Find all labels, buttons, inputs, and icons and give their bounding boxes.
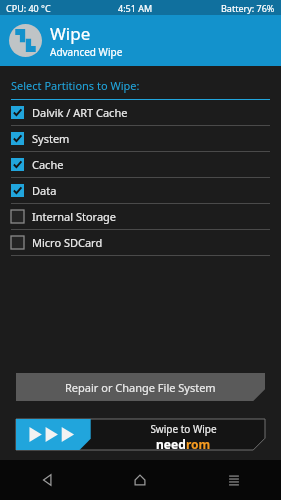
staticText: Battery: 76% — [221, 2, 275, 14]
staticText: Cache — [32, 157, 64, 172]
button[interactable]: Home — [93, 460, 187, 500]
button[interactable]: Data — [0, 178, 281, 204]
button[interactable]: Recent apps — [187, 460, 281, 500]
staticText: Micro SDCard — [32, 235, 103, 250]
staticText: Repair or Change File System — [65, 380, 216, 395]
button[interactable]: Internal Storage — [0, 204, 281, 230]
button[interactable]: Back — [0, 460, 93, 500]
button[interactable]: Micro SDCard — [0, 230, 281, 256]
button[interactable]: Swipe to Wipe — [16, 419, 265, 450]
button[interactable]: Repair or Change File System — [16, 373, 265, 401]
staticText: System — [32, 131, 70, 146]
staticText: Advanced Wipe — [50, 45, 123, 59]
button[interactable]: System — [0, 126, 281, 152]
staticText: Internal Storage — [32, 209, 117, 224]
staticText: Dalvik / ART Cache — [32, 105, 128, 120]
staticText: Wipe — [50, 22, 91, 45]
staticText: Select Partitions to Wipe: — [11, 78, 140, 93]
staticText: need — [156, 436, 186, 450]
staticText: 4:51 AM — [118, 2, 153, 14]
button[interactable]: Dalvik / ART Cache — [0, 100, 281, 126]
staticText: Data — [32, 183, 57, 198]
staticText: rom — [186, 436, 211, 450]
staticText: CPU: 40 °C — [6, 2, 51, 14]
staticText: Swipe to Wipe — [150, 422, 217, 436]
button[interactable]: Cache — [0, 152, 281, 178]
